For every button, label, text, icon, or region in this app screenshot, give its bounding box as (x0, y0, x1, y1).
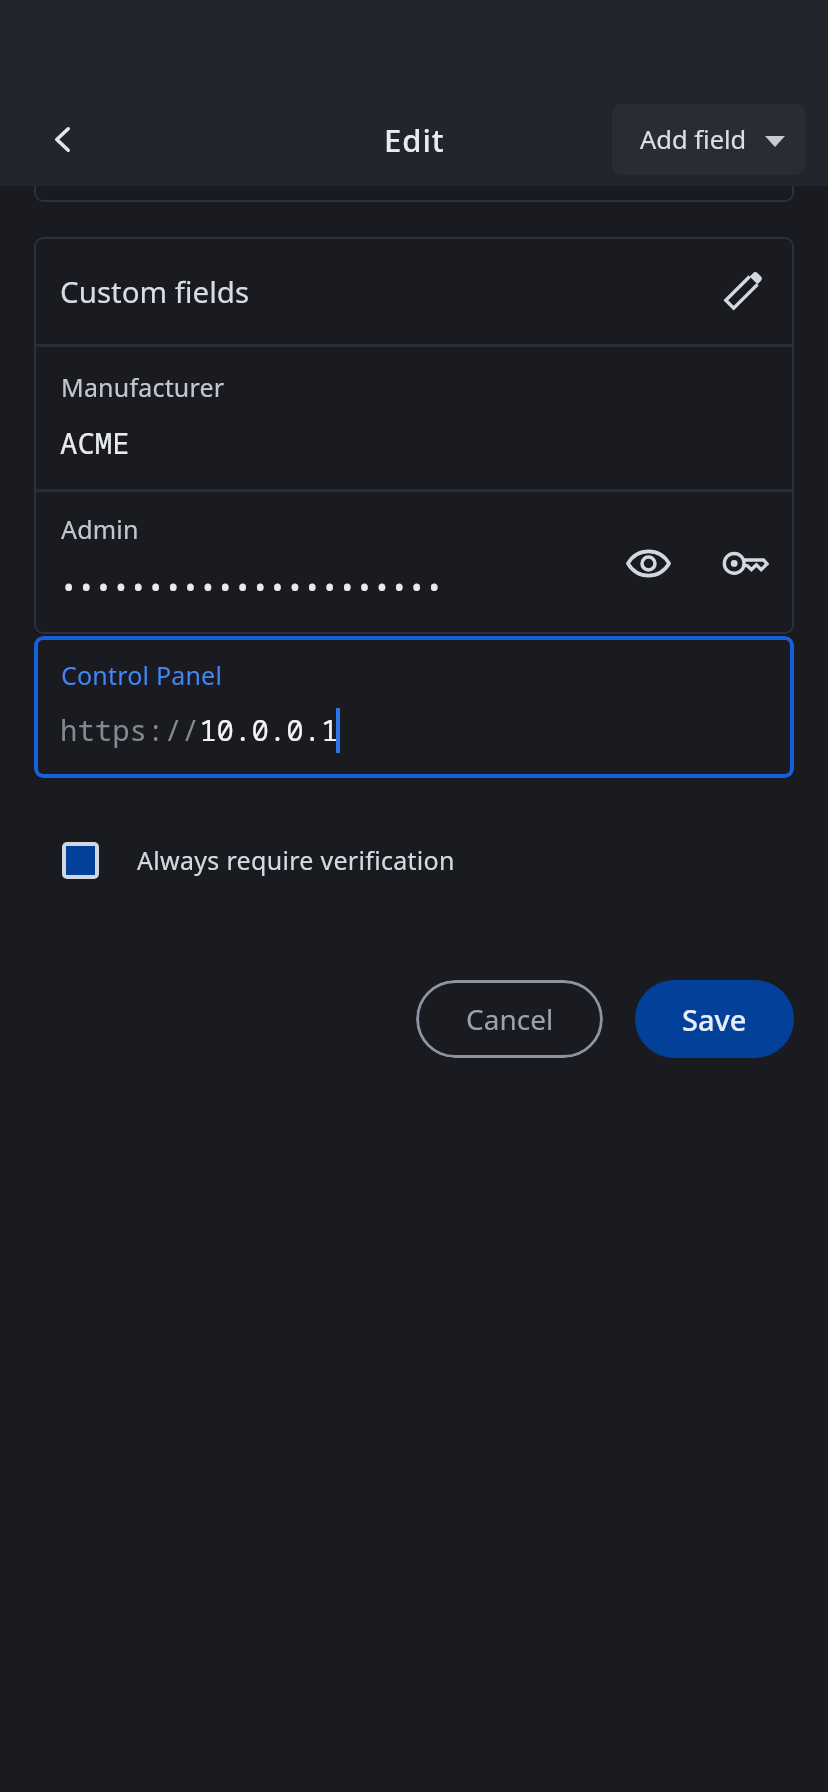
button[interactable]: Generate password (713, 531, 777, 595)
staticText: Control Panel (61, 658, 223, 692)
button[interactable]: Control Panel (34, 636, 794, 778)
button[interactable]: Admin (34, 492, 794, 634)
button[interactable]: Edit custom fields (714, 259, 774, 319)
button[interactable]: Save (635, 980, 794, 1058)
staticText: Admin (61, 512, 139, 546)
button[interactable]: Manufacturer (34, 347, 794, 489)
staticText: Cancel (466, 1000, 554, 1038)
staticText: ACME (60, 423, 130, 462)
staticText: Save (682, 1000, 747, 1039)
staticText: Always require verification (137, 843, 455, 877)
staticText: Edit (384, 119, 445, 161)
staticText: Add field (640, 122, 747, 157)
button[interactable]: Always require verification (34, 841, 479, 878)
staticText: Manufacturer (61, 370, 225, 404)
button[interactable]: Back (25, 102, 100, 177)
button[interactable]: Add field (612, 104, 805, 175)
staticText: •••••••••••••••••••••• (60, 567, 443, 606)
button[interactable]: Show password (616, 531, 680, 595)
staticText: Custom fields (60, 271, 250, 311)
button[interactable]: Cancel (416, 980, 603, 1058)
staticText: https://10.0.0.1 (60, 710, 339, 749)
button[interactable]: Custom fields (34, 237, 794, 344)
